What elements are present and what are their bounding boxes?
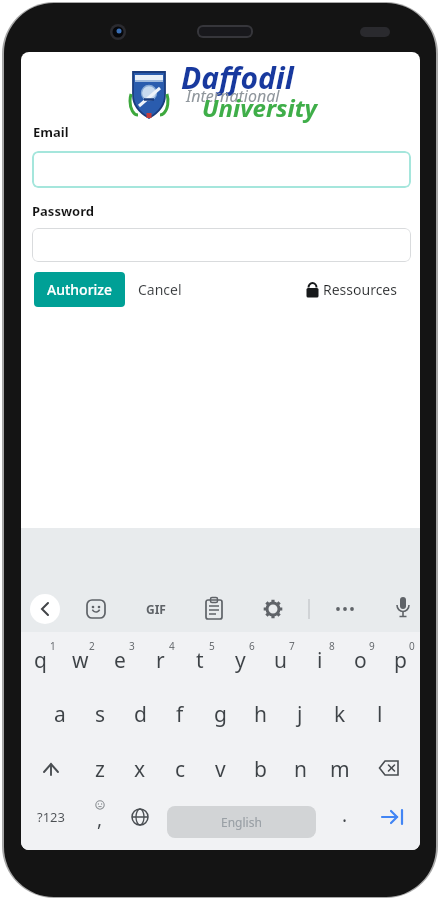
button[interactable] — [28, 592, 62, 626]
button[interactable] — [120, 795, 160, 849]
staticText: s — [95, 700, 106, 729]
button[interactable]: GIF — [139, 592, 173, 626]
button[interactable]: e — [100, 632, 140, 686]
button[interactable]: m — [320, 741, 360, 795]
staticText: 9 — [369, 639, 375, 653]
staticText: u — [274, 646, 287, 675]
button[interactable]: i — [300, 632, 340, 686]
button[interactable]: , — [80, 795, 120, 849]
button[interactable]: f — [160, 686, 200, 740]
button[interactable]: s — [80, 686, 120, 740]
button[interactable]: b — [240, 741, 280, 795]
button[interactable] — [21, 741, 80, 795]
button[interactable]: . — [320, 795, 360, 849]
staticText: Ressources — [323, 280, 397, 299]
button[interactable]: y — [220, 632, 260, 686]
staticText: p — [394, 646, 407, 675]
button[interactable]: q — [21, 632, 60, 686]
staticText: a — [54, 700, 66, 729]
staticText: v — [215, 755, 226, 784]
staticText: English — [221, 814, 262, 830]
button[interactable]: j — [280, 686, 320, 740]
staticText: 0 — [409, 639, 415, 653]
button[interactable] — [79, 592, 113, 626]
staticText: q — [34, 646, 47, 675]
button[interactable]: Authorize — [34, 272, 125, 307]
staticText: i — [317, 646, 323, 675]
staticText: o — [354, 646, 367, 675]
button[interactable]: k — [320, 686, 360, 740]
staticText: l — [377, 700, 383, 729]
staticText: Daffodil — [181, 57, 294, 98]
button[interactable]: z — [80, 741, 120, 795]
staticText: Cancel — [138, 280, 182, 299]
staticText: University — [202, 91, 317, 124]
staticText: d — [134, 700, 147, 729]
staticText: 8 — [329, 639, 335, 653]
button[interactable]: c — [160, 741, 200, 795]
staticText: 1 — [50, 639, 56, 653]
button[interactable]: w — [60, 632, 100, 686]
staticText: 2 — [89, 639, 95, 653]
button[interactable]: o — [340, 632, 380, 686]
staticText: 3 — [129, 639, 135, 653]
staticText: e — [114, 646, 126, 675]
staticText: 7 — [289, 639, 295, 653]
staticText: f — [176, 700, 184, 729]
button[interactable] — [197, 592, 231, 626]
staticText: c — [175, 755, 186, 784]
button[interactable] — [328, 592, 362, 626]
button[interactable]: a — [40, 686, 80, 740]
button[interactable]: d — [120, 686, 160, 740]
button[interactable] — [386, 592, 420, 626]
staticText: Password — [32, 202, 94, 220]
button[interactable]: English — [167, 806, 316, 838]
staticText: Authorize — [47, 280, 113, 299]
button[interactable] — [256, 592, 290, 626]
staticText: 6 — [249, 639, 255, 653]
button[interactable]: p — [380, 632, 420, 686]
staticText: w — [72, 646, 89, 675]
staticText: h — [254, 700, 267, 729]
button[interactable]: Ressources — [279, 272, 397, 307]
button[interactable]: Cancel — [129, 272, 191, 307]
staticText: t — [196, 646, 204, 675]
staticText: n — [294, 755, 307, 784]
staticText: GIF — [146, 601, 166, 617]
button[interactable]: t — [180, 632, 220, 686]
staticText: y — [235, 646, 246, 675]
button[interactable]: n — [280, 741, 320, 795]
staticText: x — [134, 755, 146, 784]
staticText: 5 — [209, 639, 215, 653]
staticText: ?123 — [37, 808, 65, 826]
button[interactable]: x — [120, 741, 160, 795]
staticText: International — [186, 85, 280, 107]
button[interactable] — [32, 151, 411, 188]
button[interactable]: l — [360, 686, 400, 740]
button[interactable]: h — [240, 686, 280, 740]
staticText: 4 — [169, 639, 175, 653]
button[interactable]: r — [140, 632, 180, 686]
staticText: z — [95, 755, 105, 784]
button[interactable] — [32, 228, 411, 262]
button[interactable]: g — [200, 686, 240, 740]
staticText: r — [156, 646, 165, 675]
staticText: . — [342, 802, 348, 828]
button[interactable] — [360, 795, 420, 849]
staticText: m — [330, 755, 350, 784]
staticText: j — [297, 700, 303, 729]
staticText: Email — [33, 123, 69, 141]
staticText: b — [254, 755, 267, 784]
staticText: g — [214, 700, 227, 729]
button[interactable]: v — [200, 741, 240, 795]
staticText: k — [334, 700, 346, 729]
staticText: , — [97, 806, 103, 832]
button[interactable]: u — [260, 632, 300, 686]
button[interactable] — [360, 741, 420, 795]
button[interactable]: ?123 — [21, 795, 80, 849]
